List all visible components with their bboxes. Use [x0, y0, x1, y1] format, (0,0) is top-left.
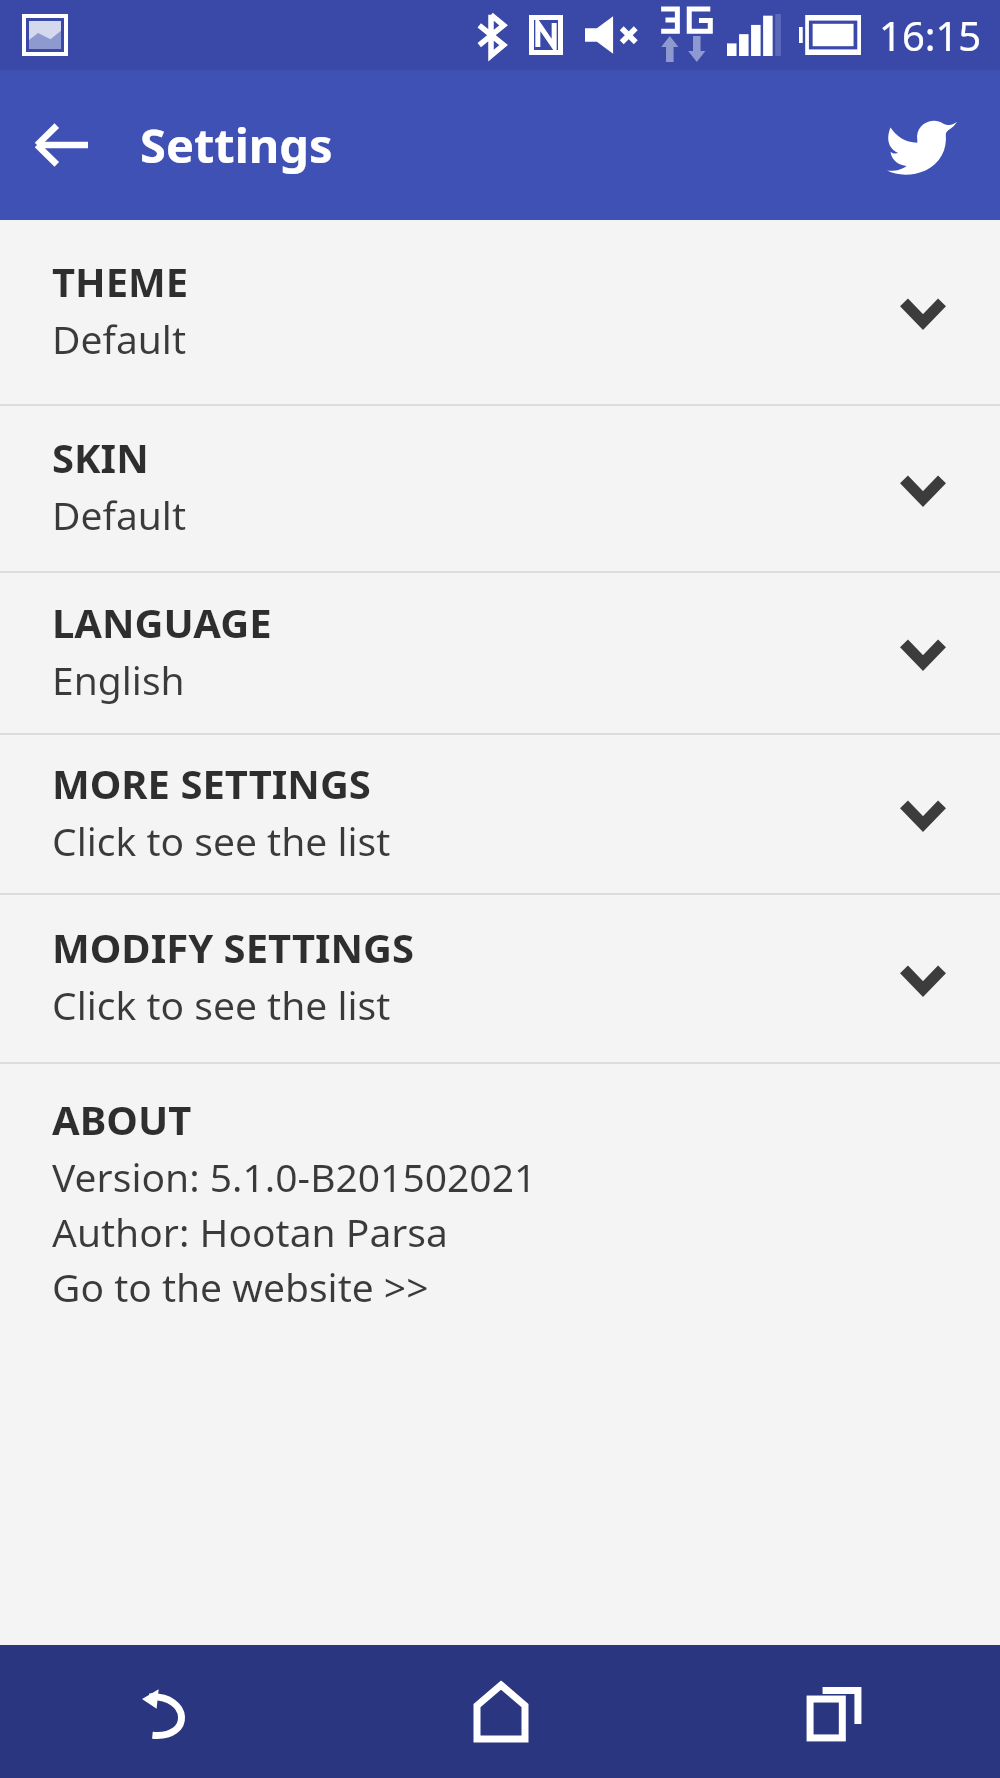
other: Expand MORE SETTINGS [888, 779, 958, 849]
button[interactable]: Recent apps [667, 1645, 1000, 1778]
staticText: 16:15 [879, 8, 982, 62]
staticText: Default [52, 312, 187, 365]
staticText: ABOUT [52, 1092, 192, 1146]
button[interactable]: LANGUAGE [0, 573, 1000, 733]
staticText: Settings [140, 113, 333, 177]
staticText: English [52, 653, 185, 706]
staticText: Default [52, 488, 187, 541]
button[interactable]: Home [334, 1645, 667, 1778]
staticText: Author: Hootan Parsa [52, 1205, 448, 1258]
other: Expand SKIN [888, 454, 958, 524]
staticText: Version: 5.1.0-B201502021 [52, 1150, 537, 1203]
staticText: Click to see the list [52, 978, 391, 1031]
staticText: Go to the website >> [52, 1260, 429, 1313]
button[interactable]: SKIN [0, 406, 1000, 571]
staticText: SKIN [52, 430, 149, 484]
other: Expand MODIFY SETTINGS [888, 944, 958, 1014]
button[interactable]: MODIFY SETTINGS [0, 895, 1000, 1062]
other: Expand THEME [888, 277, 958, 347]
button[interactable]: Go to the website >> [52, 1260, 429, 1313]
button[interactable]: MORE SETTINGS [0, 735, 1000, 893]
button[interactable]: THEME [0, 220, 1000, 404]
staticText: MORE SETTINGS [52, 756, 371, 810]
button[interactable]: Back [0, 1645, 334, 1778]
staticText: THEME [52, 254, 189, 308]
staticText: LANGUAGE [52, 595, 272, 649]
button[interactable]: Back [22, 105, 102, 185]
staticText: Click to see the list [52, 814, 391, 867]
other: Expand LANGUAGE [888, 618, 958, 688]
staticText: MODIFY SETTINGS [52, 920, 415, 974]
button[interactable]: Twitter [880, 103, 964, 187]
